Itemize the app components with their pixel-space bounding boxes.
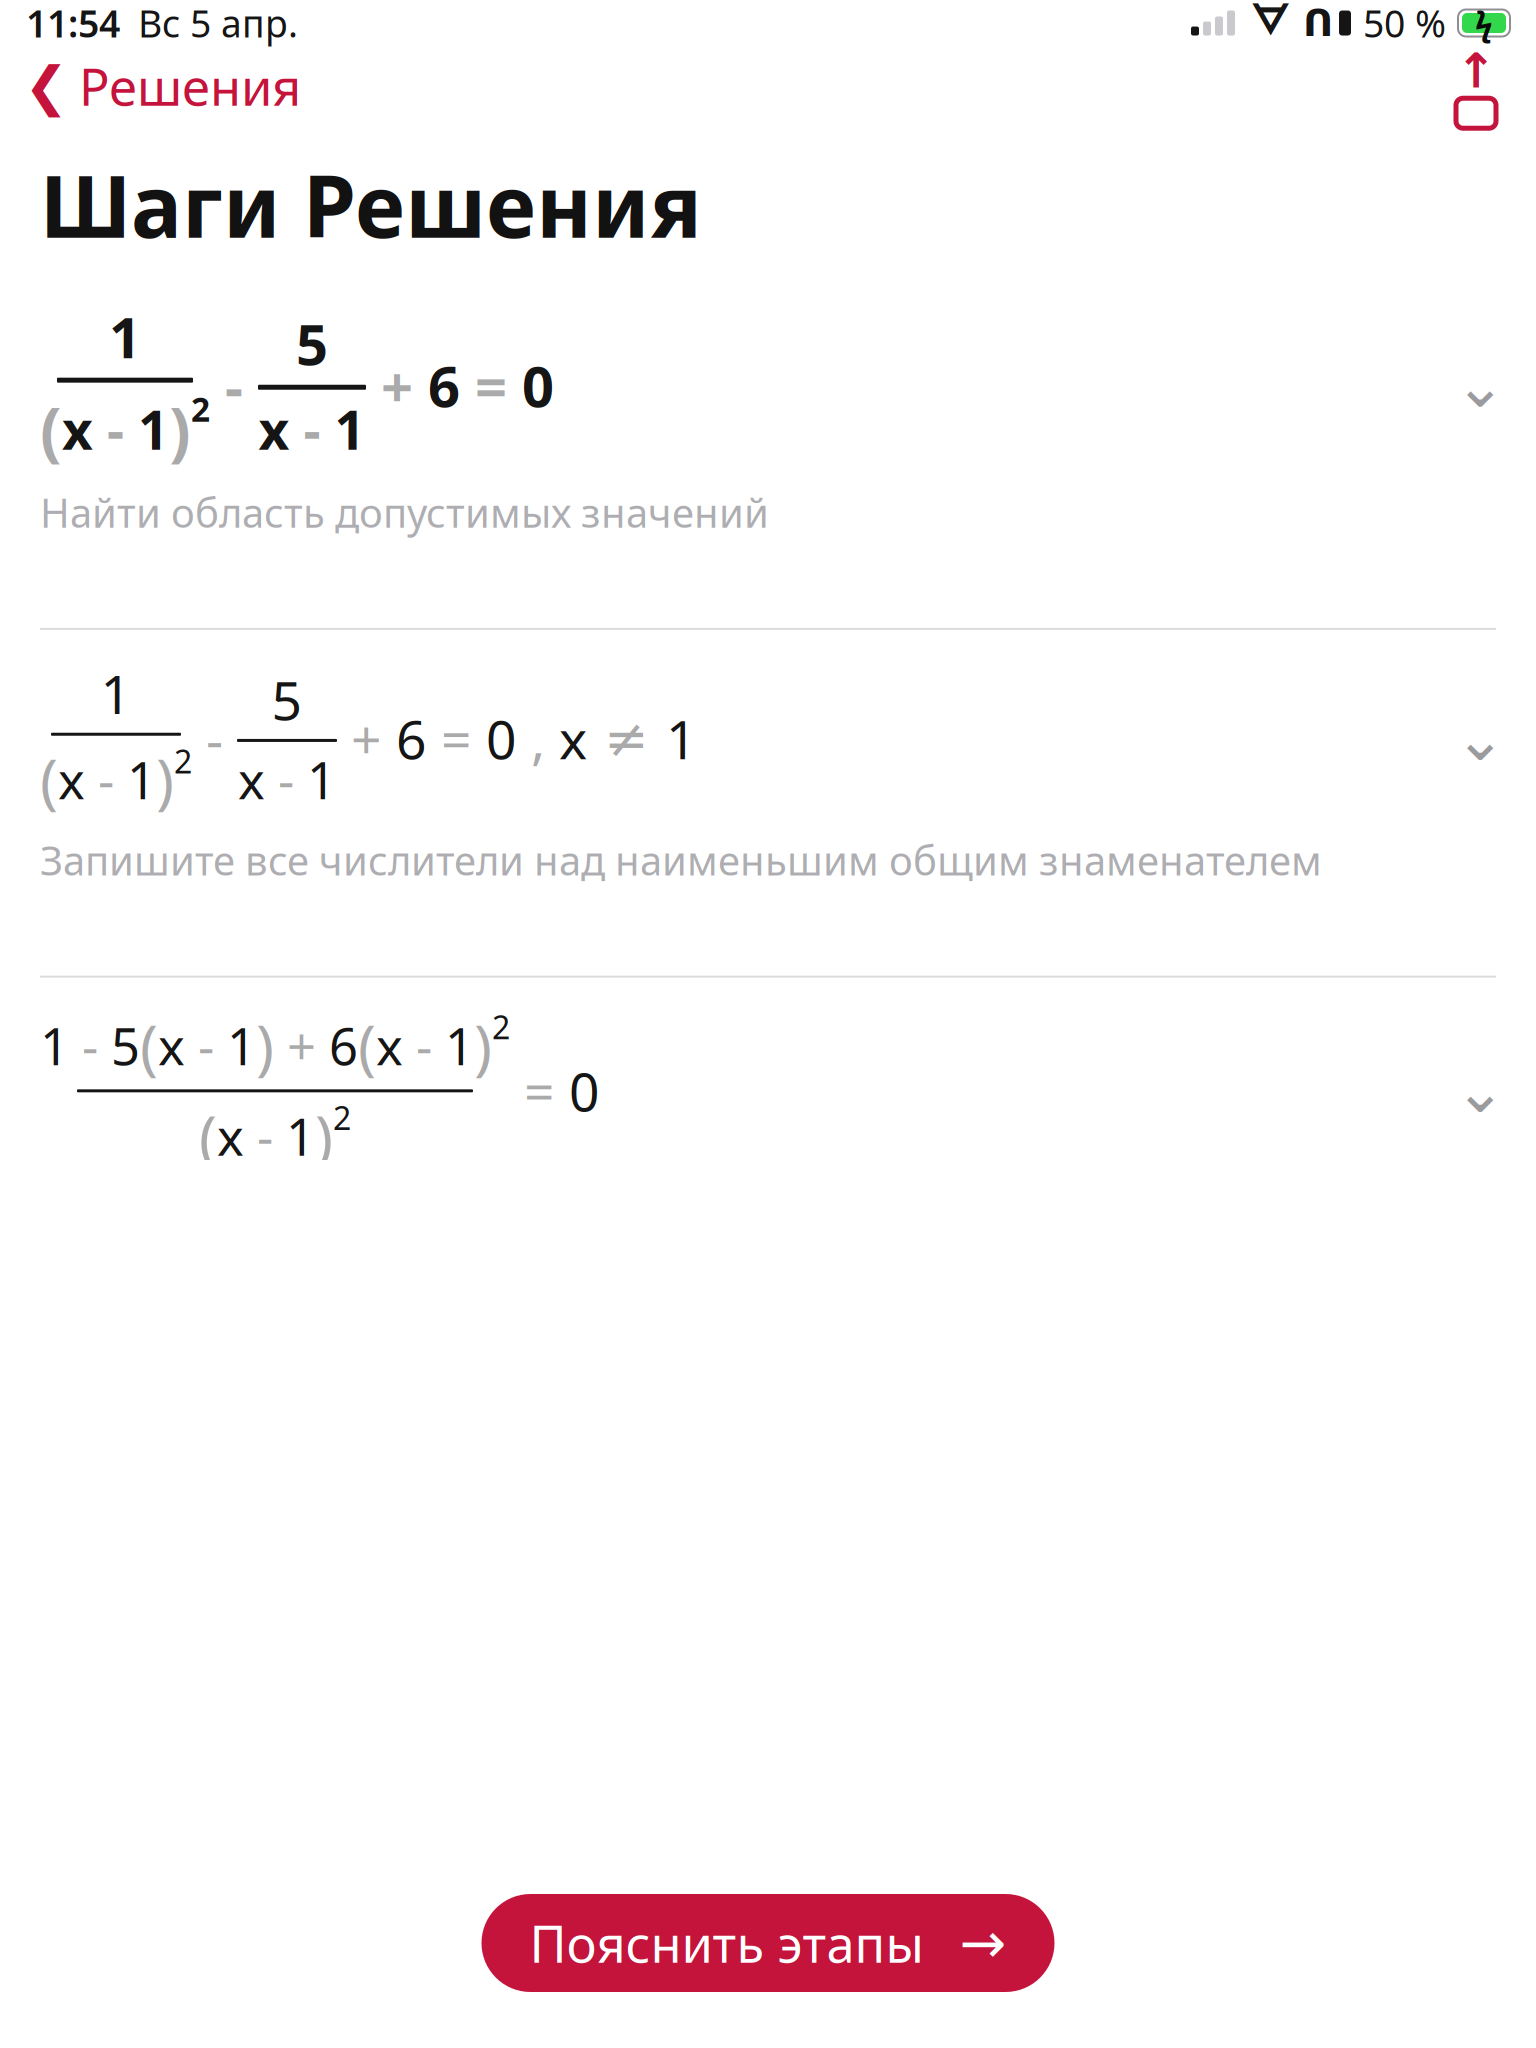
staticText: 1 <box>127 746 156 813</box>
button[interactable]: 1 <box>0 978 1536 1176</box>
staticText: Запишите все числители над наименьшим об… <box>40 833 1322 886</box>
button[interactable]: Развернуть шаг <box>1444 1064 1516 1118</box>
staticText: + <box>366 348 428 423</box>
staticText: 2 <box>492 1006 510 1048</box>
staticText: ⌄ <box>1454 1056 1505 1126</box>
staticText: Вс 5 апр. <box>138 0 298 48</box>
staticText: 6 <box>329 1012 358 1079</box>
staticText: = <box>510 1055 569 1126</box>
button[interactable]: Пояснить этапы <box>481 1894 1054 1992</box>
staticText: 5 <box>111 1012 140 1079</box>
staticText: = <box>427 703 486 774</box>
staticText: - <box>403 1012 445 1079</box>
staticText: x <box>258 394 289 465</box>
staticText: 1 <box>109 299 141 374</box>
staticText: ᗊ <box>1251 3 1289 42</box>
staticText: 2 <box>174 740 192 782</box>
staticText: Привести подобные члены <box>40 1954 567 2007</box>
staticText: = <box>460 348 522 423</box>
staticText: Пояснить этапы <box>529 1909 923 1977</box>
button[interactable]: Развернуть шаг <box>1444 712 1516 766</box>
button[interactable]: ❮ <box>0 42 301 130</box>
staticText: ϟ <box>1475 2 1493 44</box>
staticText: 0 <box>522 348 554 423</box>
staticText: 1 <box>100 658 131 729</box>
staticText: 2 <box>333 1096 351 1139</box>
staticText: - <box>289 394 334 465</box>
staticText: 1 <box>666 703 697 774</box>
staticText: x <box>58 746 85 813</box>
staticText: x <box>559 703 587 774</box>
staticText: Решения <box>79 52 301 120</box>
staticText: 1 <box>286 1102 315 1170</box>
staticText: 1 <box>445 1012 474 1079</box>
staticText: ⌄ <box>1454 704 1505 773</box>
staticText: 1 <box>227 1012 256 1079</box>
staticText: 1 <box>334 394 365 465</box>
staticText: ) <box>315 1096 333 1176</box>
button[interactable]: 1 <box>0 271 1536 472</box>
staticText: 11:54 <box>26 0 120 48</box>
staticText: ) <box>256 1006 274 1085</box>
staticText: - <box>265 746 307 813</box>
staticText: 5 <box>271 664 302 735</box>
staticText: Найти область допустимых значений <box>40 486 769 539</box>
button[interactable]: Развернуть шаг <box>1444 358 1516 412</box>
staticText: x <box>217 1102 244 1170</box>
staticText: → <box>959 1911 1006 1975</box>
staticText: ) <box>169 387 191 472</box>
staticText: - <box>192 703 237 774</box>
staticText: ᑎ <box>1303 2 1333 44</box>
staticText: ( <box>358 1006 376 1085</box>
staticText: 1 <box>307 746 336 813</box>
staticText: 1 <box>40 1012 69 1079</box>
button[interactable]: Поделиться <box>1434 46 1536 126</box>
staticText: - <box>244 1102 286 1170</box>
staticText: - <box>210 348 258 423</box>
staticText: ) <box>156 740 174 819</box>
button[interactable]: 1 <box>0 630 1536 819</box>
staticText: Шаги Решения <box>40 148 702 261</box>
